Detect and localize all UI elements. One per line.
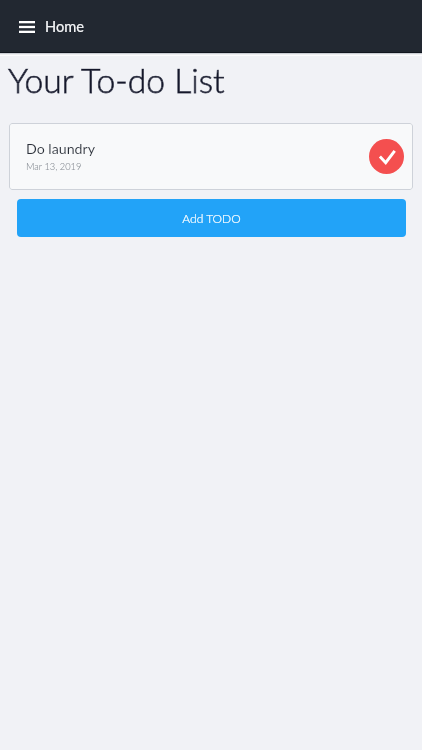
button[interactable]: Add TODO bbox=[17, 199, 406, 237]
button[interactable]: Mark done bbox=[369, 139, 404, 174]
button[interactable]: Do laundry bbox=[9, 123, 413, 190]
staticText: Your To-do List bbox=[8, 60, 225, 100]
staticText: Home bbox=[45, 18, 84, 36]
button[interactable]: Menu bbox=[11, 10, 43, 42]
staticText: Do laundry bbox=[26, 140, 96, 157]
staticText: Your To-do List bbox=[8, 60, 225, 100]
staticText: Mar 13, 2019 bbox=[26, 161, 82, 172]
staticText: Add TODO bbox=[182, 211, 241, 225]
